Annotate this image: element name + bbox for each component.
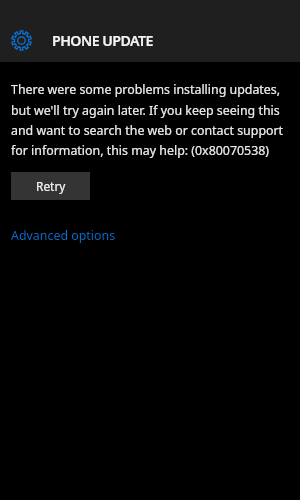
staticText: Advanced options <box>11 227 116 244</box>
button[interactable]: Retry <box>11 172 90 200</box>
staticText: There were some problems installing upda… <box>11 81 295 158</box>
staticText: Retry <box>36 178 66 194</box>
staticText: PHONE UPDATE <box>52 31 153 50</box>
other: Settings <box>11 30 32 51</box>
button[interactable]: Advanced options <box>11 227 116 244</box>
